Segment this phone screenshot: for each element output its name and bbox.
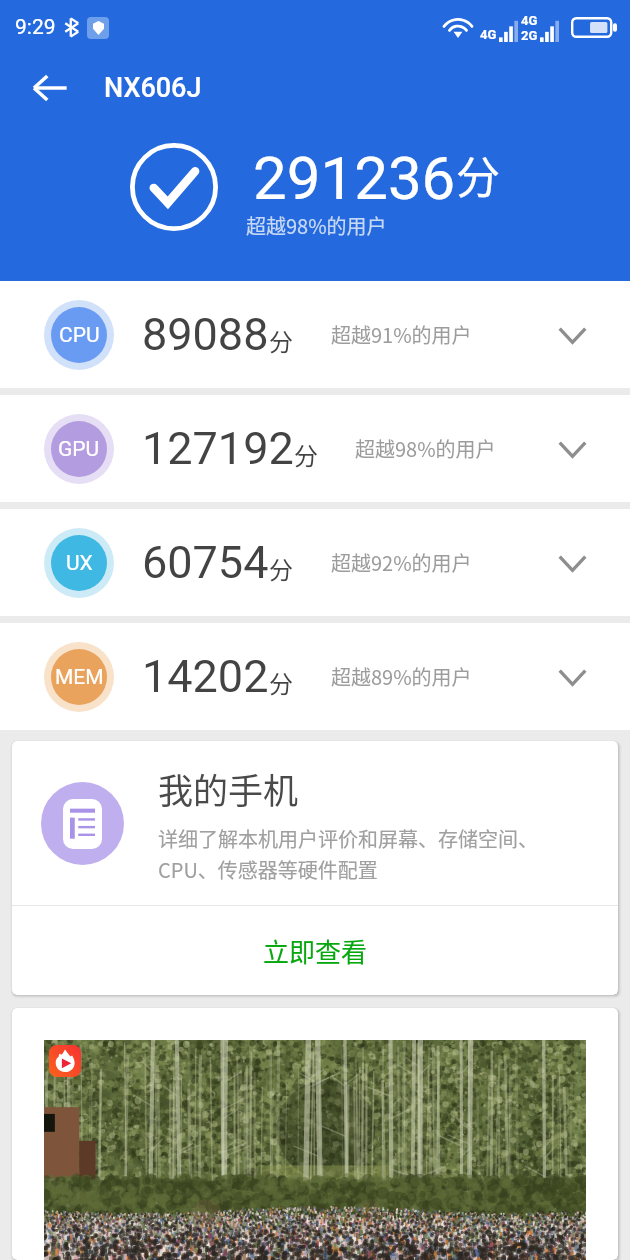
button[interactable]: 立即查看	[12, 906, 618, 995]
staticText: 超越98%的用户	[246, 211, 387, 240]
staticText: 4G	[521, 13, 538, 28]
staticText: MEM	[55, 665, 104, 690]
staticText: 分	[269, 551, 293, 586]
button[interactable]: 我的手机	[12, 741, 618, 905]
button[interactable]: Expand	[540, 645, 604, 709]
button[interactable]: Back	[16, 54, 84, 122]
button[interactable]: GPU	[0, 395, 630, 502]
button[interactable]: MEM	[0, 623, 630, 730]
staticText: 127192	[142, 422, 294, 475]
staticText: 超越98%的用户	[355, 434, 496, 463]
button[interactable]: Expand	[540, 303, 604, 367]
button[interactable]: Play video	[12, 1008, 618, 1260]
staticText: GPU	[58, 437, 100, 462]
button[interactable]: Expand	[540, 417, 604, 481]
staticText: CPU	[59, 323, 100, 348]
button[interactable]: Play video	[49, 1045, 81, 1077]
button[interactable]: UX	[0, 509, 630, 616]
staticText: 分	[269, 665, 293, 700]
staticText: 详细了解本机用户评价和屏幕、存储空间、 CPU、传感器等硬件配置	[158, 824, 538, 884]
button[interactable]: Expand	[540, 531, 604, 595]
staticText: 291236	[253, 143, 456, 213]
staticText: 超越91%的用户	[331, 320, 472, 349]
staticText: 超越92%的用户	[331, 548, 472, 577]
button[interactable]: CPU	[0, 281, 630, 388]
staticText: 我的手机	[158, 763, 299, 814]
staticText: 9:29	[15, 15, 56, 40]
staticText: 2G	[521, 28, 538, 42]
staticText: NX606J	[104, 72, 202, 104]
staticText: 分	[269, 323, 293, 358]
staticText: 14202	[142, 650, 269, 703]
staticText: 分	[456, 143, 500, 207]
staticText: 立即查看	[263, 932, 368, 970]
staticText: 分	[294, 437, 318, 472]
staticText: 4G	[480, 27, 497, 42]
staticText: 超越89%的用户	[331, 662, 472, 691]
staticText: 60754	[142, 536, 269, 589]
staticText: 89088	[142, 308, 269, 361]
staticText: UX	[66, 551, 93, 576]
